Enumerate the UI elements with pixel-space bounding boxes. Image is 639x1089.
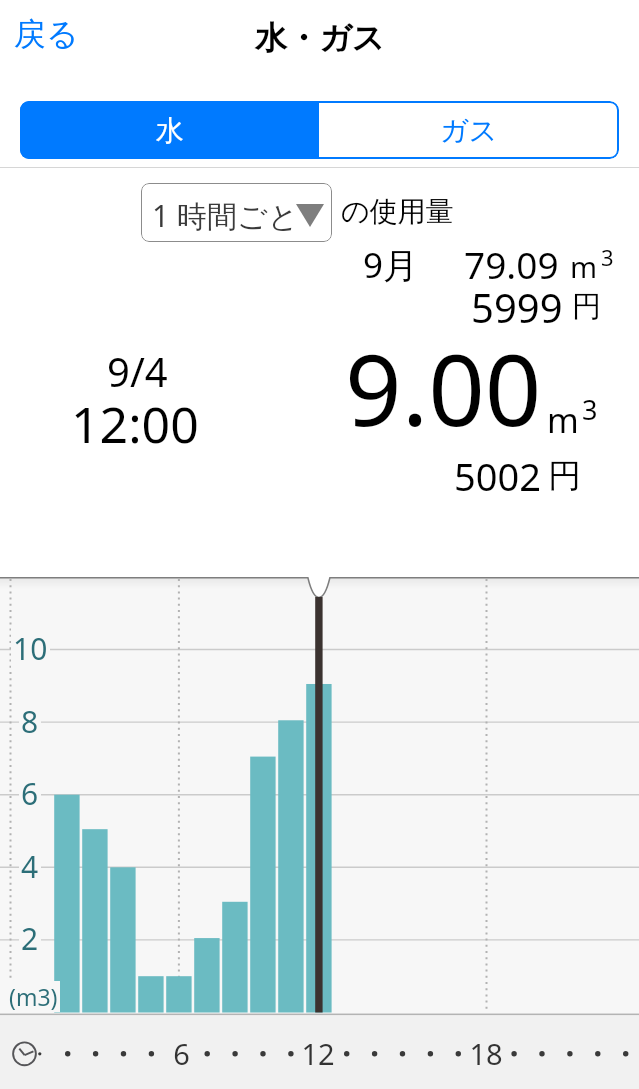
staticText: 3 xyxy=(601,242,614,272)
staticText: 79.09 xyxy=(464,239,559,289)
staticText: 12 xyxy=(301,1034,335,1073)
staticText: m xyxy=(570,247,598,286)
staticText: 18 xyxy=(469,1034,503,1073)
staticText: 円 xyxy=(548,455,581,497)
other: Time range xyxy=(0,1016,639,1089)
staticText: 1 時間ごと xyxy=(152,195,299,236)
staticText: 4 xyxy=(21,846,39,887)
staticText: (m3) xyxy=(9,981,58,1012)
staticText: m xyxy=(547,397,579,443)
button[interactable]: 水 xyxy=(20,101,319,159)
staticText: 9/4 xyxy=(107,344,168,398)
staticText: 3 xyxy=(582,391,598,428)
staticText: 5999 xyxy=(471,280,563,334)
button[interactable]: ガス xyxy=(319,101,619,159)
staticText: 9.00 xyxy=(345,320,542,455)
staticText: 戻る xyxy=(14,14,79,54)
staticText: 6 xyxy=(21,773,39,814)
staticText: 2 xyxy=(21,918,39,959)
staticText: 5002 xyxy=(454,450,541,502)
staticText: 10 xyxy=(13,628,48,669)
staticText: 水 xyxy=(156,113,184,148)
staticText: ガス xyxy=(440,113,498,148)
staticText: 8 xyxy=(21,701,39,742)
staticText: 円 xyxy=(572,288,601,325)
staticText: の使用量 xyxy=(341,194,454,229)
staticText: 12:00 xyxy=(71,390,199,458)
button[interactable]: 戻る xyxy=(4,8,88,60)
staticText: 9月 xyxy=(363,241,419,289)
button[interactable]: 1 時間ごと xyxy=(141,183,332,242)
staticText: 6 xyxy=(173,1034,190,1073)
staticText: 水・ガス xyxy=(255,18,385,58)
